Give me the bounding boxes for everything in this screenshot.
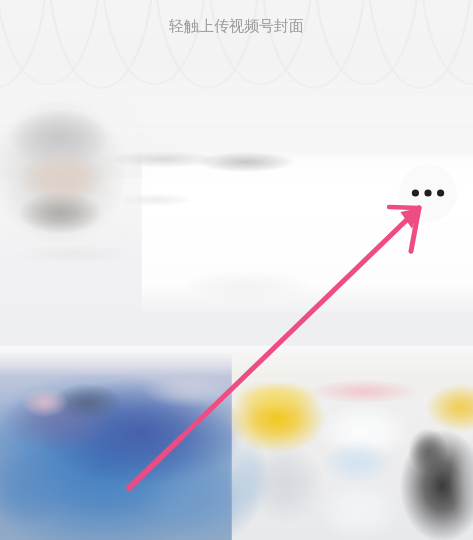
staticText: 轻触上传视频号封面 (169, 17, 304, 36)
button[interactable]: More options (399, 164, 457, 222)
